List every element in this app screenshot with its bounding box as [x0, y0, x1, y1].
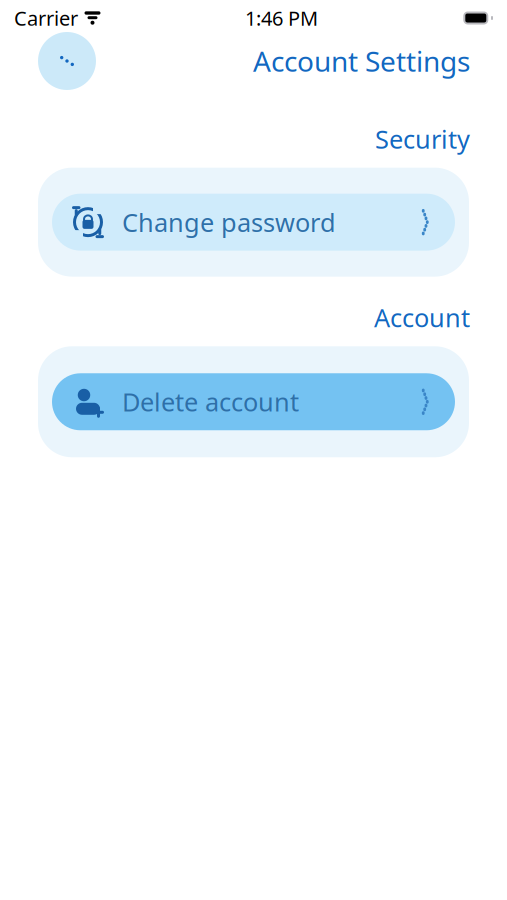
staticText: 1:46 PM	[245, 5, 318, 31]
staticText: Carrier	[14, 5, 78, 31]
staticText: Change password	[122, 205, 336, 239]
staticText: Account Settings	[253, 42, 470, 80]
button[interactable]: Delete account	[52, 373, 455, 430]
staticText: Account	[374, 301, 470, 334]
button[interactable]: Change password	[52, 194, 455, 251]
button[interactable]: Back	[38, 32, 96, 90]
staticText: Security	[375, 122, 470, 156]
staticText: Delete account	[122, 385, 299, 419]
